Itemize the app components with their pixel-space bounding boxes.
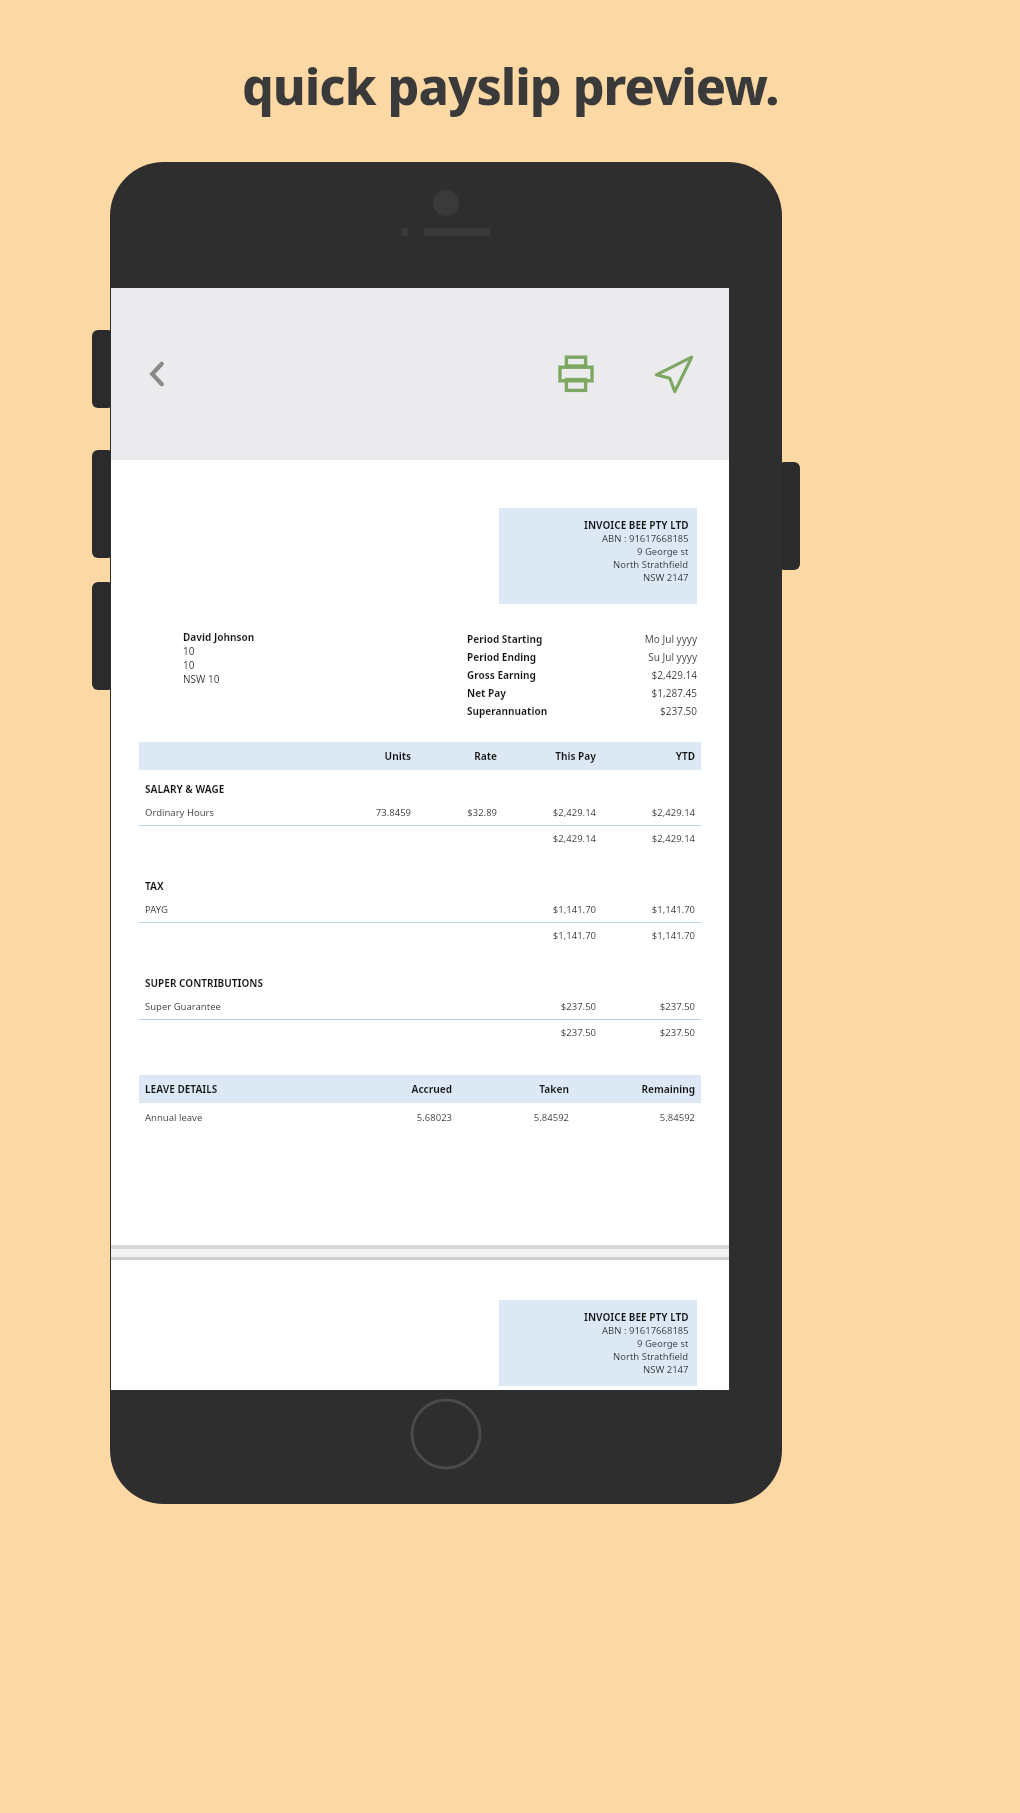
staticText: 73.8459	[325, 806, 411, 819]
button[interactable]: Send	[643, 343, 705, 405]
staticText: SALARY & WAGE	[145, 782, 225, 796]
staticText: LEAVE DETAILS	[145, 1082, 335, 1096]
staticText: David Johnson	[183, 630, 255, 644]
staticText: 9 George st	[637, 1337, 689, 1350]
staticText: 10	[183, 658, 195, 672]
staticText: Rate	[411, 749, 497, 763]
staticText: Ordinary Hours	[145, 806, 325, 819]
button[interactable]: Print	[545, 343, 607, 405]
staticText: Units	[325, 749, 411, 763]
staticText: NSW 2147	[643, 571, 689, 584]
staticText: Super Guarantee	[145, 1000, 325, 1013]
staticText: Su Jul yyyy	[648, 650, 697, 664]
staticText: This Pay	[497, 749, 596, 763]
staticText: Annual leave	[145, 1111, 335, 1124]
staticText: $237.50	[596, 1026, 695, 1039]
staticText: $1,141.70	[497, 903, 596, 916]
staticText: Period Ending	[467, 650, 537, 664]
staticText: Gross Earning	[467, 668, 536, 682]
staticText: quick payslip preview.	[242, 52, 779, 120]
staticText: 10	[183, 644, 195, 658]
staticText: $1,287.45	[651, 686, 697, 700]
staticText: Accrued	[335, 1082, 452, 1096]
staticText: ABN : 91617668185	[602, 1324, 689, 1337]
staticText: SUPER CONTRIBUTIONS	[145, 976, 263, 990]
staticText: $2,429.14	[497, 806, 596, 819]
staticText: Mo Jul yyyy	[644, 632, 697, 646]
staticText: Net Pay	[467, 686, 506, 700]
staticText: $2,429.14	[596, 806, 695, 819]
staticText: PAYG	[145, 903, 325, 916]
staticText: $2,429.14	[651, 668, 697, 682]
staticText: Remaining	[569, 1082, 695, 1096]
staticText: $2,429.14	[497, 832, 596, 845]
staticText: $237.50	[596, 1000, 695, 1013]
staticText: 5.84592	[569, 1111, 695, 1124]
staticText: NSW 10	[183, 672, 220, 686]
staticText: North Strathfield	[613, 558, 689, 571]
staticText: $2,429.14	[596, 832, 695, 845]
staticText: TAX	[145, 879, 164, 893]
staticText: $237.50	[660, 704, 697, 718]
staticText: North Strathfield	[613, 1350, 689, 1363]
staticText: 5.68023	[335, 1111, 452, 1124]
staticText: INVOICE BEE PTY LTD	[584, 1310, 689, 1324]
staticText: $237.50	[497, 1026, 596, 1039]
staticText: $32.89	[411, 806, 497, 819]
staticText: 5.84592	[452, 1111, 569, 1124]
staticText: YTD	[596, 749, 695, 763]
staticText: Period Starting	[467, 632, 543, 646]
staticText: Taken	[452, 1082, 569, 1096]
staticText: $1,141.70	[596, 903, 695, 916]
staticText: $1,141.70	[596, 929, 695, 942]
staticText: ABN : 91617668185	[602, 532, 689, 545]
staticText: Superannuation	[467, 704, 548, 718]
staticText: 9 George st	[637, 545, 689, 558]
button[interactable]: Back	[129, 346, 185, 402]
staticText: NSW 2147	[643, 1363, 689, 1376]
staticText: INVOICE BEE PTY LTD	[584, 518, 689, 532]
staticText: $1,141.70	[497, 929, 596, 942]
staticText: $237.50	[497, 1000, 596, 1013]
